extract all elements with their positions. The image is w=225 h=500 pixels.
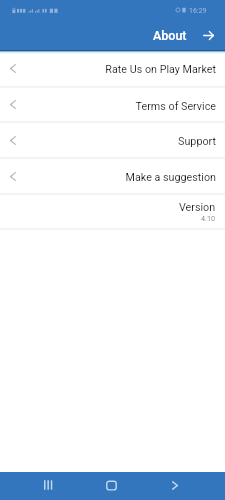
button[interactable]: Support — [0, 123, 225, 157]
staticText: Rate Us on Play Market — [25, 63, 216, 76]
staticText: Terms of Service — [25, 100, 216, 113]
staticText: 16:29 — [189, 7, 207, 15]
button[interactable]: Terms of Service — [0, 88, 225, 121]
staticText: Make a suggestion — [25, 171, 216, 184]
staticText: Support — [25, 135, 216, 148]
button[interactable]: Rate Us on Play Market — [0, 50, 225, 86]
staticText: Version — [179, 201, 216, 214]
staticText: About — [153, 28, 187, 43]
button[interactable]: Recent apps — [17, 472, 80, 498]
button[interactable]: Back — [143, 472, 206, 498]
staticText: 4.10 — [201, 214, 216, 222]
button[interactable]: Make a suggestion — [0, 159, 225, 193]
button[interactable]: Home — [80, 472, 143, 498]
button[interactable]: Back — [198, 20, 219, 50]
